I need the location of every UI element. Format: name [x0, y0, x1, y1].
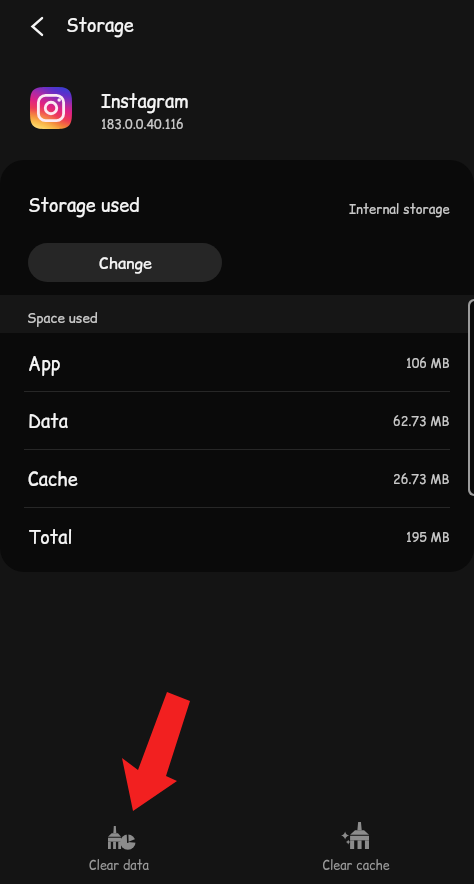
button[interactable]: Clear data — [0, 812, 237, 884]
staticText: Storage used — [28, 193, 140, 218]
staticText: Cache — [28, 467, 78, 492]
staticText: 106 MB — [406, 355, 450, 372]
staticText: Clear cache — [322, 857, 390, 874]
staticText: Data — [28, 409, 68, 434]
button[interactable]: App — [0, 333, 474, 391]
staticText: 183.0.0.40.116 — [101, 116, 184, 133]
button[interactable]: Back — [0, 0, 66, 52]
staticText: 26.73 MB — [393, 471, 450, 488]
staticText: Storage — [66, 13, 134, 38]
staticText: Change — [99, 252, 152, 274]
button[interactable]: Cache — [0, 449, 474, 507]
button[interactable]: Total — [0, 507, 474, 565]
staticText: 62.73 MB — [393, 413, 450, 430]
button[interactable]: Change — [28, 243, 222, 282]
staticText: 195 MB — [406, 529, 450, 546]
staticText: Total — [28, 525, 73, 550]
staticText: Space used — [27, 309, 98, 328]
staticText: Internal storage — [349, 200, 450, 218]
staticText: App — [28, 351, 61, 376]
staticText: Instagram — [101, 89, 189, 114]
button[interactable]: Clear cache — [237, 812, 474, 884]
button[interactable]: Data — [0, 391, 474, 449]
staticText: Clear data — [89, 857, 149, 874]
